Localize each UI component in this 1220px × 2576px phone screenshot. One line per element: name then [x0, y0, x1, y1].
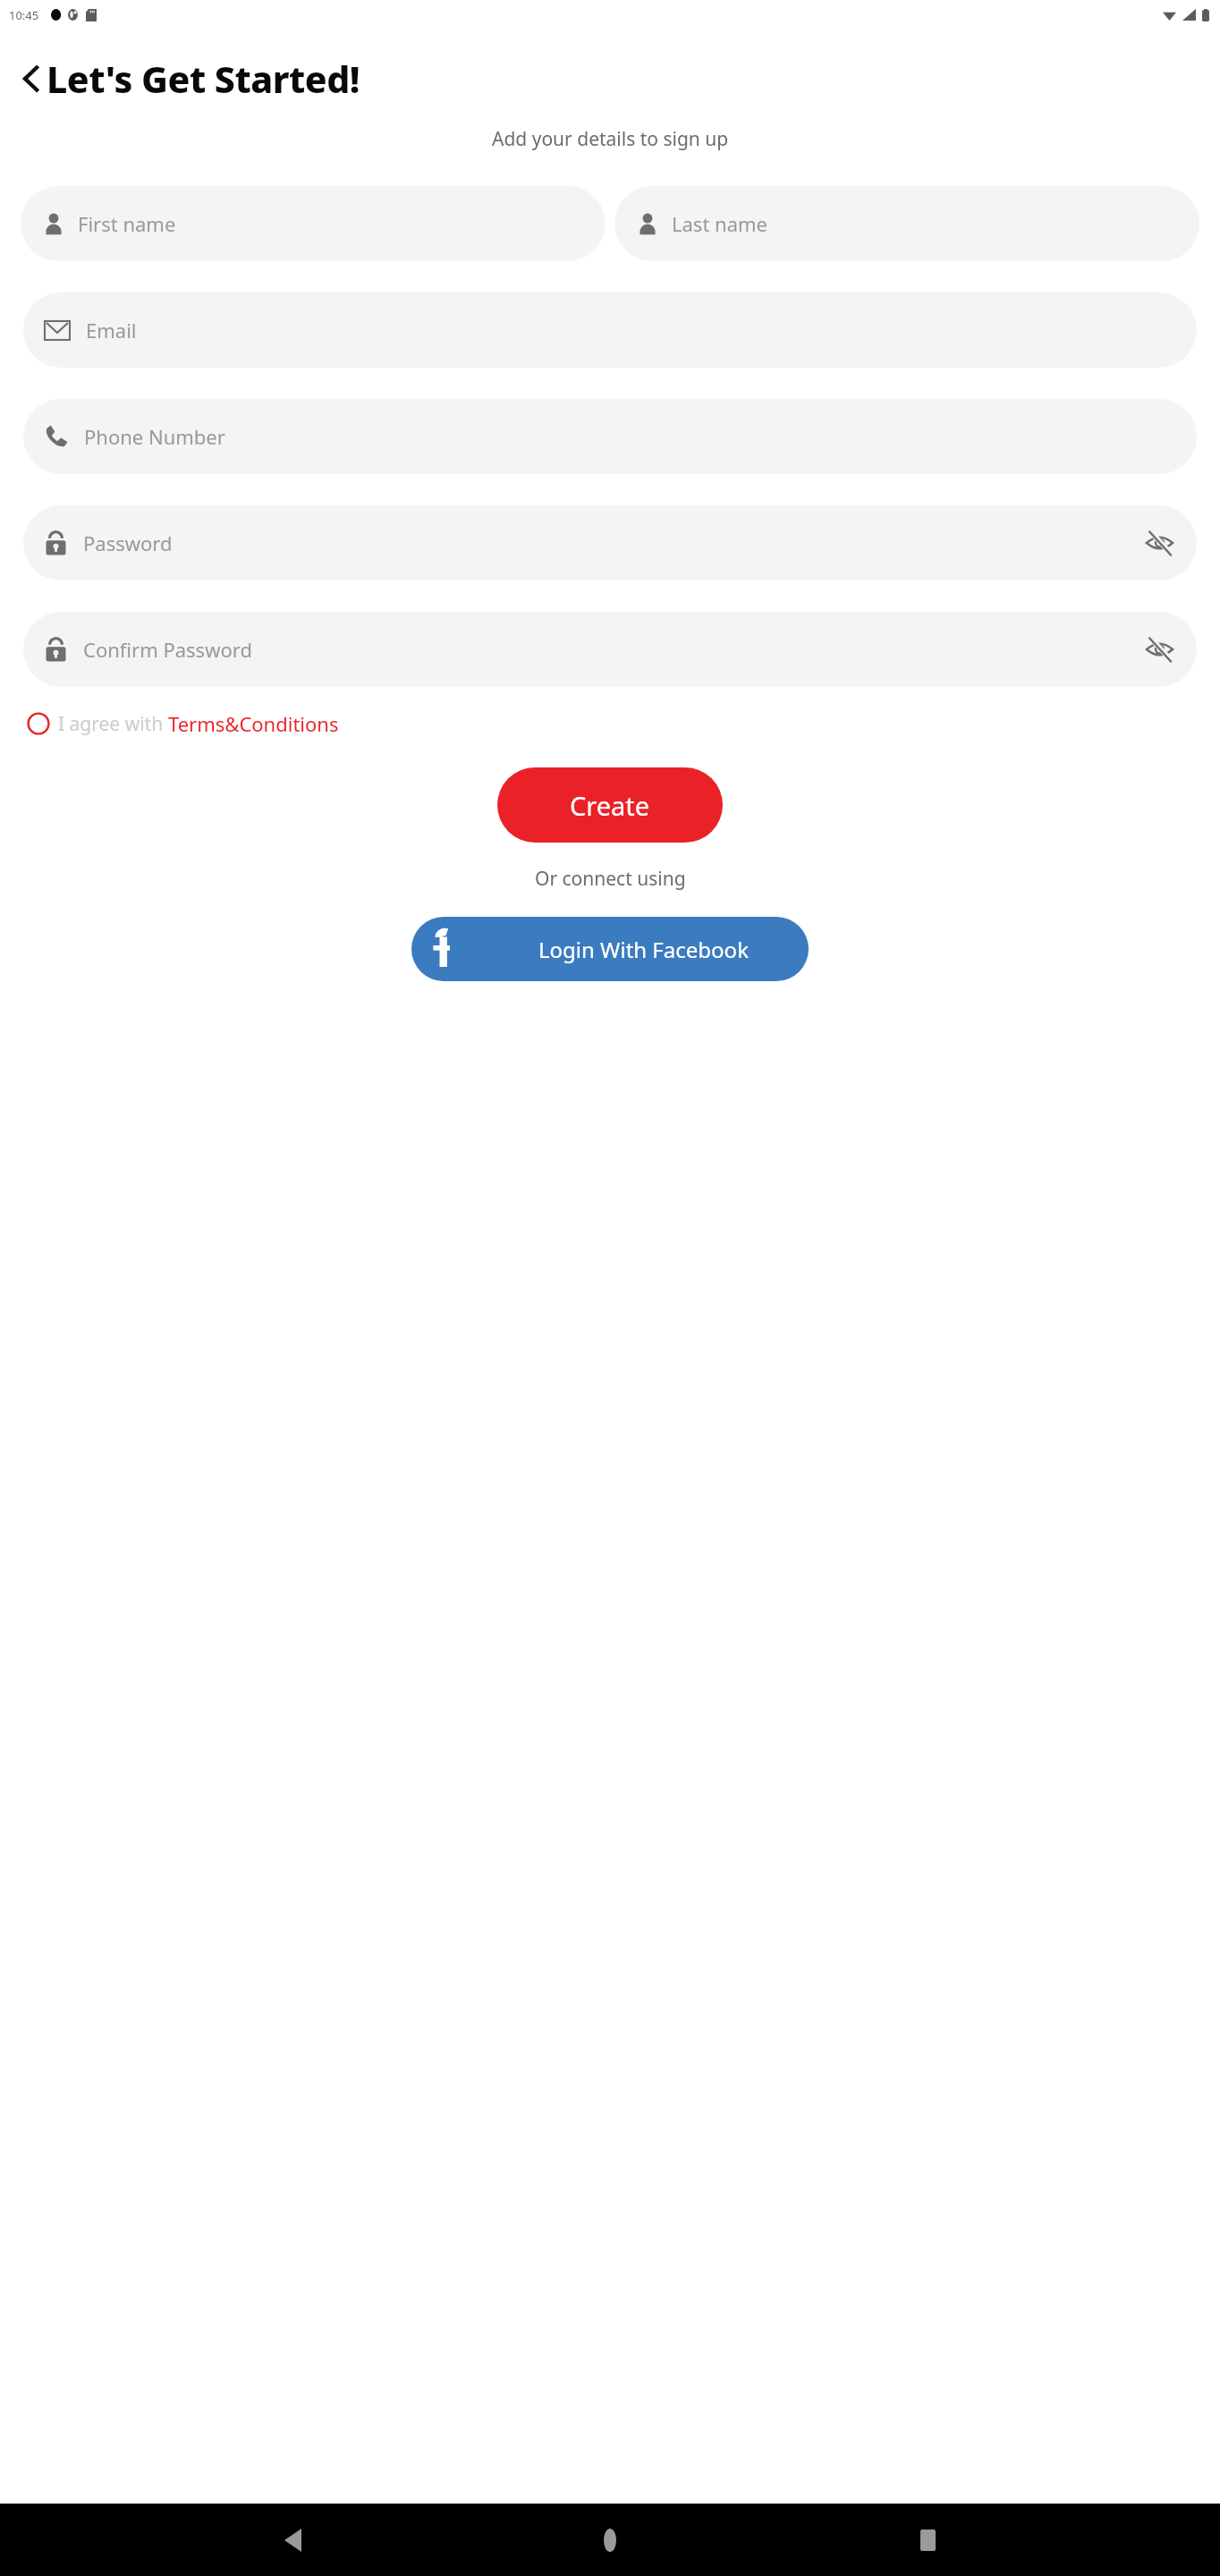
- button[interactable]: Phone Number: [23, 399, 1197, 474]
- staticText: Add your details to sign up: [492, 126, 729, 152]
- button[interactable]: First name: [21, 186, 606, 261]
- staticText: Confirm Password: [83, 636, 252, 663]
- button[interactable]: Email: [23, 292, 1197, 368]
- staticText: Login With Facebook: [538, 935, 749, 964]
- staticText: Create: [570, 788, 650, 823]
- staticText: Let's Get Started!: [47, 54, 360, 104]
- staticText: I agree with: [58, 711, 168, 737]
- staticText: 10:45: [9, 7, 39, 23]
- button[interactable]: Create: [497, 767, 723, 843]
- button[interactable]: Back: [11, 58, 52, 99]
- button[interactable]: Home: [585, 2515, 635, 2565]
- button[interactable]: Login With Facebook: [411, 917, 809, 981]
- staticText: Terms&Conditions: [168, 710, 339, 737]
- button[interactable]: Confirm Password: [23, 612, 1197, 687]
- button[interactable]: Back: [267, 2515, 318, 2565]
- staticText: Password: [83, 530, 173, 556]
- staticText: First name: [78, 210, 176, 237]
- button[interactable]: Last name: [614, 186, 1199, 261]
- button[interactable]: Toggle password visibility: [1141, 525, 1177, 561]
- button[interactable]: Recent apps: [902, 2515, 953, 2565]
- staticText: Email: [86, 317, 137, 343]
- button[interactable]: Toggle password visibility: [1141, 631, 1177, 667]
- button[interactable]: I agree with: [27, 710, 339, 737]
- button[interactable]: Password: [23, 505, 1197, 580]
- staticText: Phone Number: [84, 423, 225, 450]
- staticText: Or connect using: [535, 866, 686, 892]
- staticText: Last name: [672, 210, 767, 237]
